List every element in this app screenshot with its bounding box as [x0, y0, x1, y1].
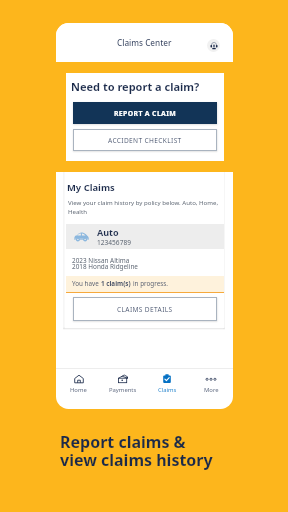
staticText: View your claim history by policy below.… — [68, 198, 219, 216]
button[interactable]: Claims — [145, 369, 189, 409]
staticText: My Claims — [67, 181, 115, 194]
staticText: You have — [72, 279, 101, 288]
staticText: Auto — [97, 226, 119, 238]
button[interactable]: ACCIDENT CHECKLIST — [73, 129, 217, 151]
button[interactable]: REPORT A CLAIM — [73, 102, 217, 124]
staticText: Claims Center — [117, 37, 172, 48]
staticText: REPORT A CLAIM — [114, 109, 177, 118]
staticText: 2023 Nissan Altima 2018 Honda Ridgeline — [72, 256, 138, 271]
button[interactable]: Payments — [101, 369, 145, 409]
staticText: ACCIDENT CHECKLIST — [108, 136, 182, 145]
staticText: Need to report a claim? — [71, 79, 200, 94]
button[interactable]: Home — [56, 369, 101, 409]
staticText: 123456789 — [97, 238, 131, 247]
staticText: CLAIMS DETAILS — [117, 305, 173, 314]
button[interactable]: CLAIMS DETAILS — [73, 297, 217, 321]
staticText: in progress. — [133, 279, 168, 288]
staticText: Report claims & view claims history — [60, 431, 213, 471]
button[interactable]: Support — [207, 39, 220, 52]
staticText: More — [204, 386, 219, 394]
staticText: 1 claim(s) — [101, 279, 133, 288]
button[interactable]: Auto — [66, 224, 224, 249]
button[interactable]: More — [189, 369, 233, 409]
staticText: Home — [70, 386, 87, 394]
staticText: Payments — [109, 386, 137, 394]
staticText: Claims — [158, 386, 177, 394]
